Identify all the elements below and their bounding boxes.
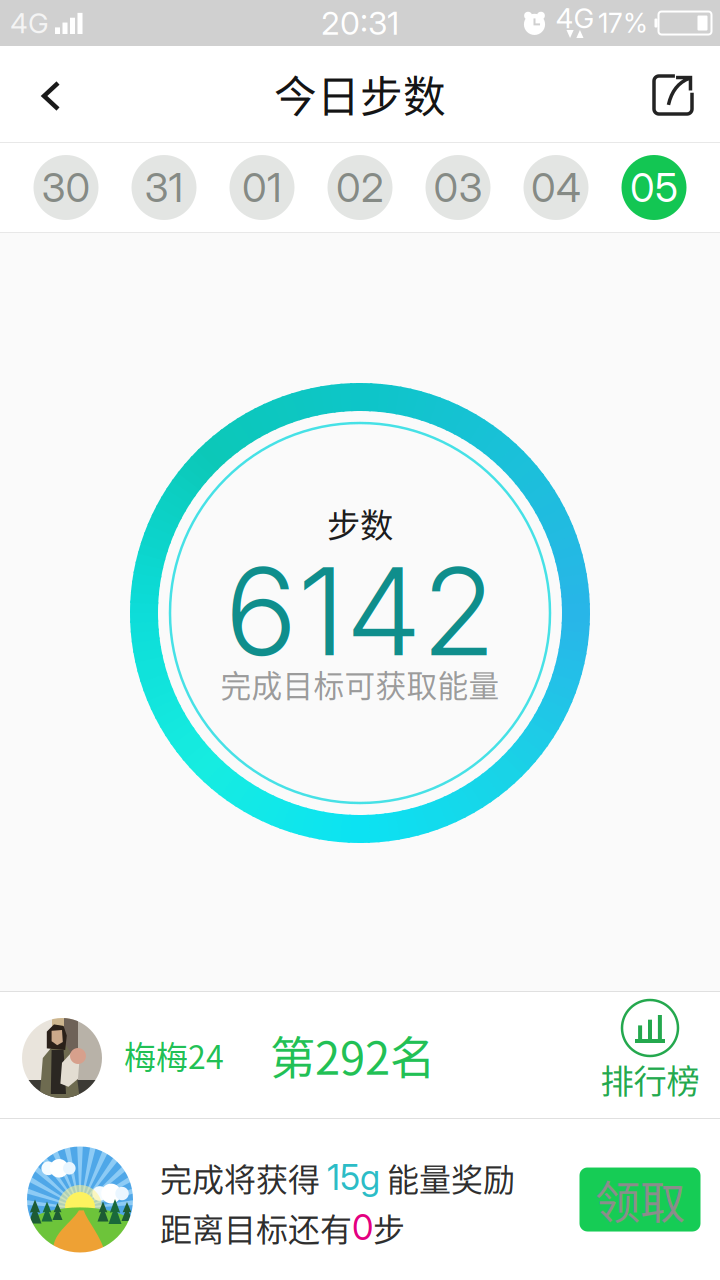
staticText: 完成目标可获取能量: [220, 662, 499, 706]
staticText: 20:31: [321, 4, 399, 42]
staticText: 04: [531, 163, 581, 212]
staticText: 领取: [595, 1167, 685, 1232]
button[interactable]: 02: [327, 155, 392, 220]
button[interactable]: 领取: [560, 1119, 720, 1280]
staticText: 01: [242, 163, 282, 212]
staticText: 能量奖励: [380, 1154, 515, 1201]
button[interactable]: 03: [425, 155, 490, 220]
staticText: 17%: [598, 7, 648, 39]
staticText: 排行榜: [600, 1055, 699, 1103]
button[interactable]: 31: [131, 155, 196, 220]
staticText: 05: [630, 163, 678, 212]
staticText: 今日步数: [274, 63, 446, 125]
staticText: 4G: [555, 1, 594, 35]
staticText: 03: [433, 163, 482, 212]
staticText: 6142: [224, 538, 495, 684]
staticText: 完成将获得: [160, 1154, 327, 1201]
button[interactable]: Back: [0, 46, 96, 142]
button[interactable]: 01: [229, 155, 294, 220]
staticText: 30: [41, 163, 90, 212]
staticText: 梅梅24: [124, 1032, 224, 1078]
button[interactable]: 04: [523, 155, 588, 220]
staticText: 第292名: [270, 1022, 435, 1088]
staticText: 步数: [327, 499, 393, 547]
staticText: 15g: [327, 1156, 380, 1198]
staticText: 02: [336, 163, 384, 212]
button[interactable]: 30: [33, 155, 98, 220]
button[interactable]: 05: [621, 155, 686, 220]
staticText: 步: [373, 1204, 405, 1251]
button[interactable]: Share: [630, 46, 720, 142]
staticText: 0: [352, 1206, 373, 1248]
button[interactable]: 排行榜: [580, 992, 720, 1118]
staticText: 4G: [10, 6, 49, 40]
staticText: 31: [144, 163, 183, 212]
staticText: 距离目标还有: [160, 1204, 352, 1251]
